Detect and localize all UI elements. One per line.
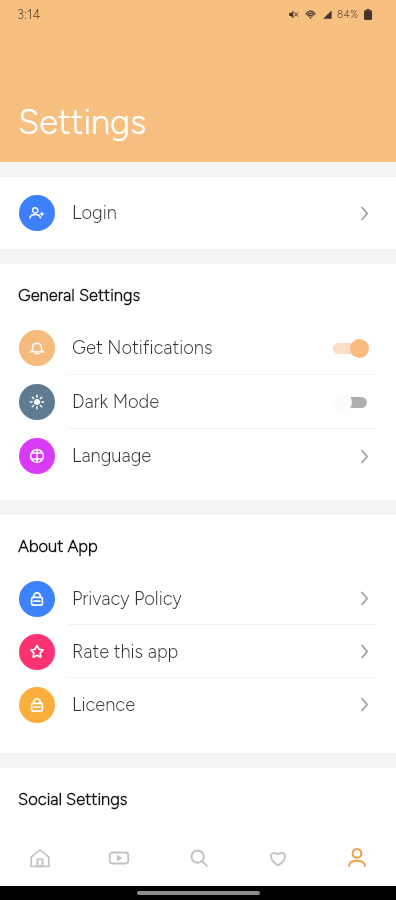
- button[interactable]: Videos: [79, 830, 158, 886]
- staticText: 3:14: [17, 7, 41, 23]
- staticText: Dark Mode: [72, 391, 160, 413]
- button[interactable]: Get Notifications: [0, 321, 396, 375]
- button[interactable]: Rate this app: [0, 625, 396, 678]
- staticText: About App: [18, 536, 98, 556]
- staticText: General Settings: [18, 285, 141, 305]
- button[interactable]: Privacy Policy: [0, 572, 396, 625]
- staticText: Privacy Policy: [72, 588, 182, 610]
- button[interactable]: Search: [159, 830, 238, 886]
- staticText: Get Notifications: [72, 337, 213, 359]
- button[interactable]: Dark Mode: [0, 375, 396, 429]
- button[interactable]: Home: [0, 830, 79, 886]
- button[interactable]: Profile: [317, 830, 396, 886]
- button[interactable]: Licence: [0, 678, 396, 731]
- staticText: Rate this app: [72, 641, 179, 663]
- staticText: Settings: [18, 101, 147, 142]
- button[interactable]: Favourites: [238, 830, 317, 886]
- button[interactable]: Login: [0, 177, 396, 249]
- staticText: Language: [72, 445, 152, 467]
- staticText: 84%: [337, 8, 359, 21]
- button[interactable]: Language: [0, 429, 396, 483]
- staticText: Login: [72, 202, 117, 224]
- staticText: Licence: [72, 694, 136, 716]
- staticText: Social Settings: [18, 789, 128, 809]
